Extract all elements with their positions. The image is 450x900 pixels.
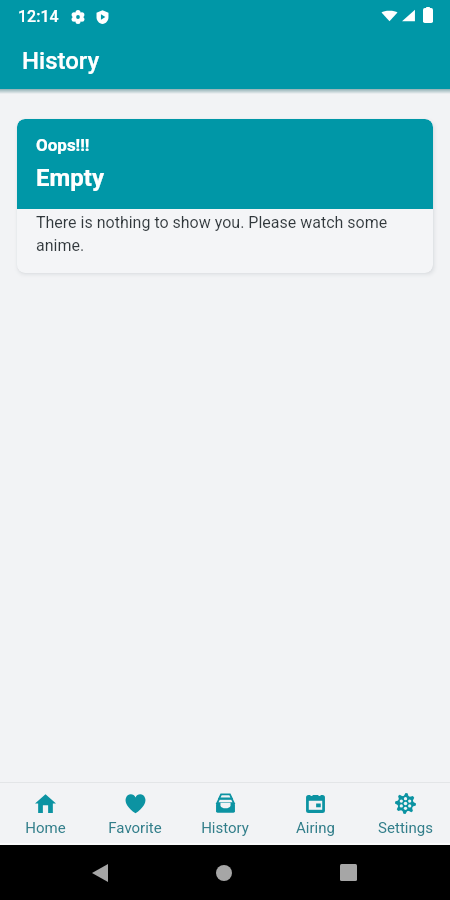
- staticText: Oops!!!: [36, 135, 90, 155]
- button[interactable]: History: [180, 783, 270, 843]
- staticText: There is nothing to show you. Please wat…: [36, 213, 414, 255]
- button[interactable]: Airing: [270, 783, 360, 843]
- other: Back: [92, 864, 108, 882]
- button[interactable]: Recent apps: [310, 845, 386, 900]
- staticText: Airing: [296, 819, 335, 837]
- button[interactable]: Home: [0, 783, 90, 843]
- staticText: 12:14: [18, 7, 59, 26]
- button[interactable]: Oops!!!: [17, 119, 433, 273]
- staticText: Home: [25, 819, 66, 837]
- staticText: Empty: [36, 164, 104, 192]
- button[interactable]: Favorite: [90, 783, 180, 843]
- button[interactable]: Back: [62, 845, 138, 900]
- staticText: Favorite: [108, 819, 162, 837]
- other: Recent apps: [340, 864, 357, 881]
- other: Home: [216, 865, 232, 881]
- button[interactable]: Settings: [360, 783, 450, 843]
- button[interactable]: Home: [186, 845, 262, 900]
- staticText: History: [22, 47, 100, 75]
- staticText: Settings: [378, 819, 433, 837]
- staticText: History: [201, 819, 249, 837]
